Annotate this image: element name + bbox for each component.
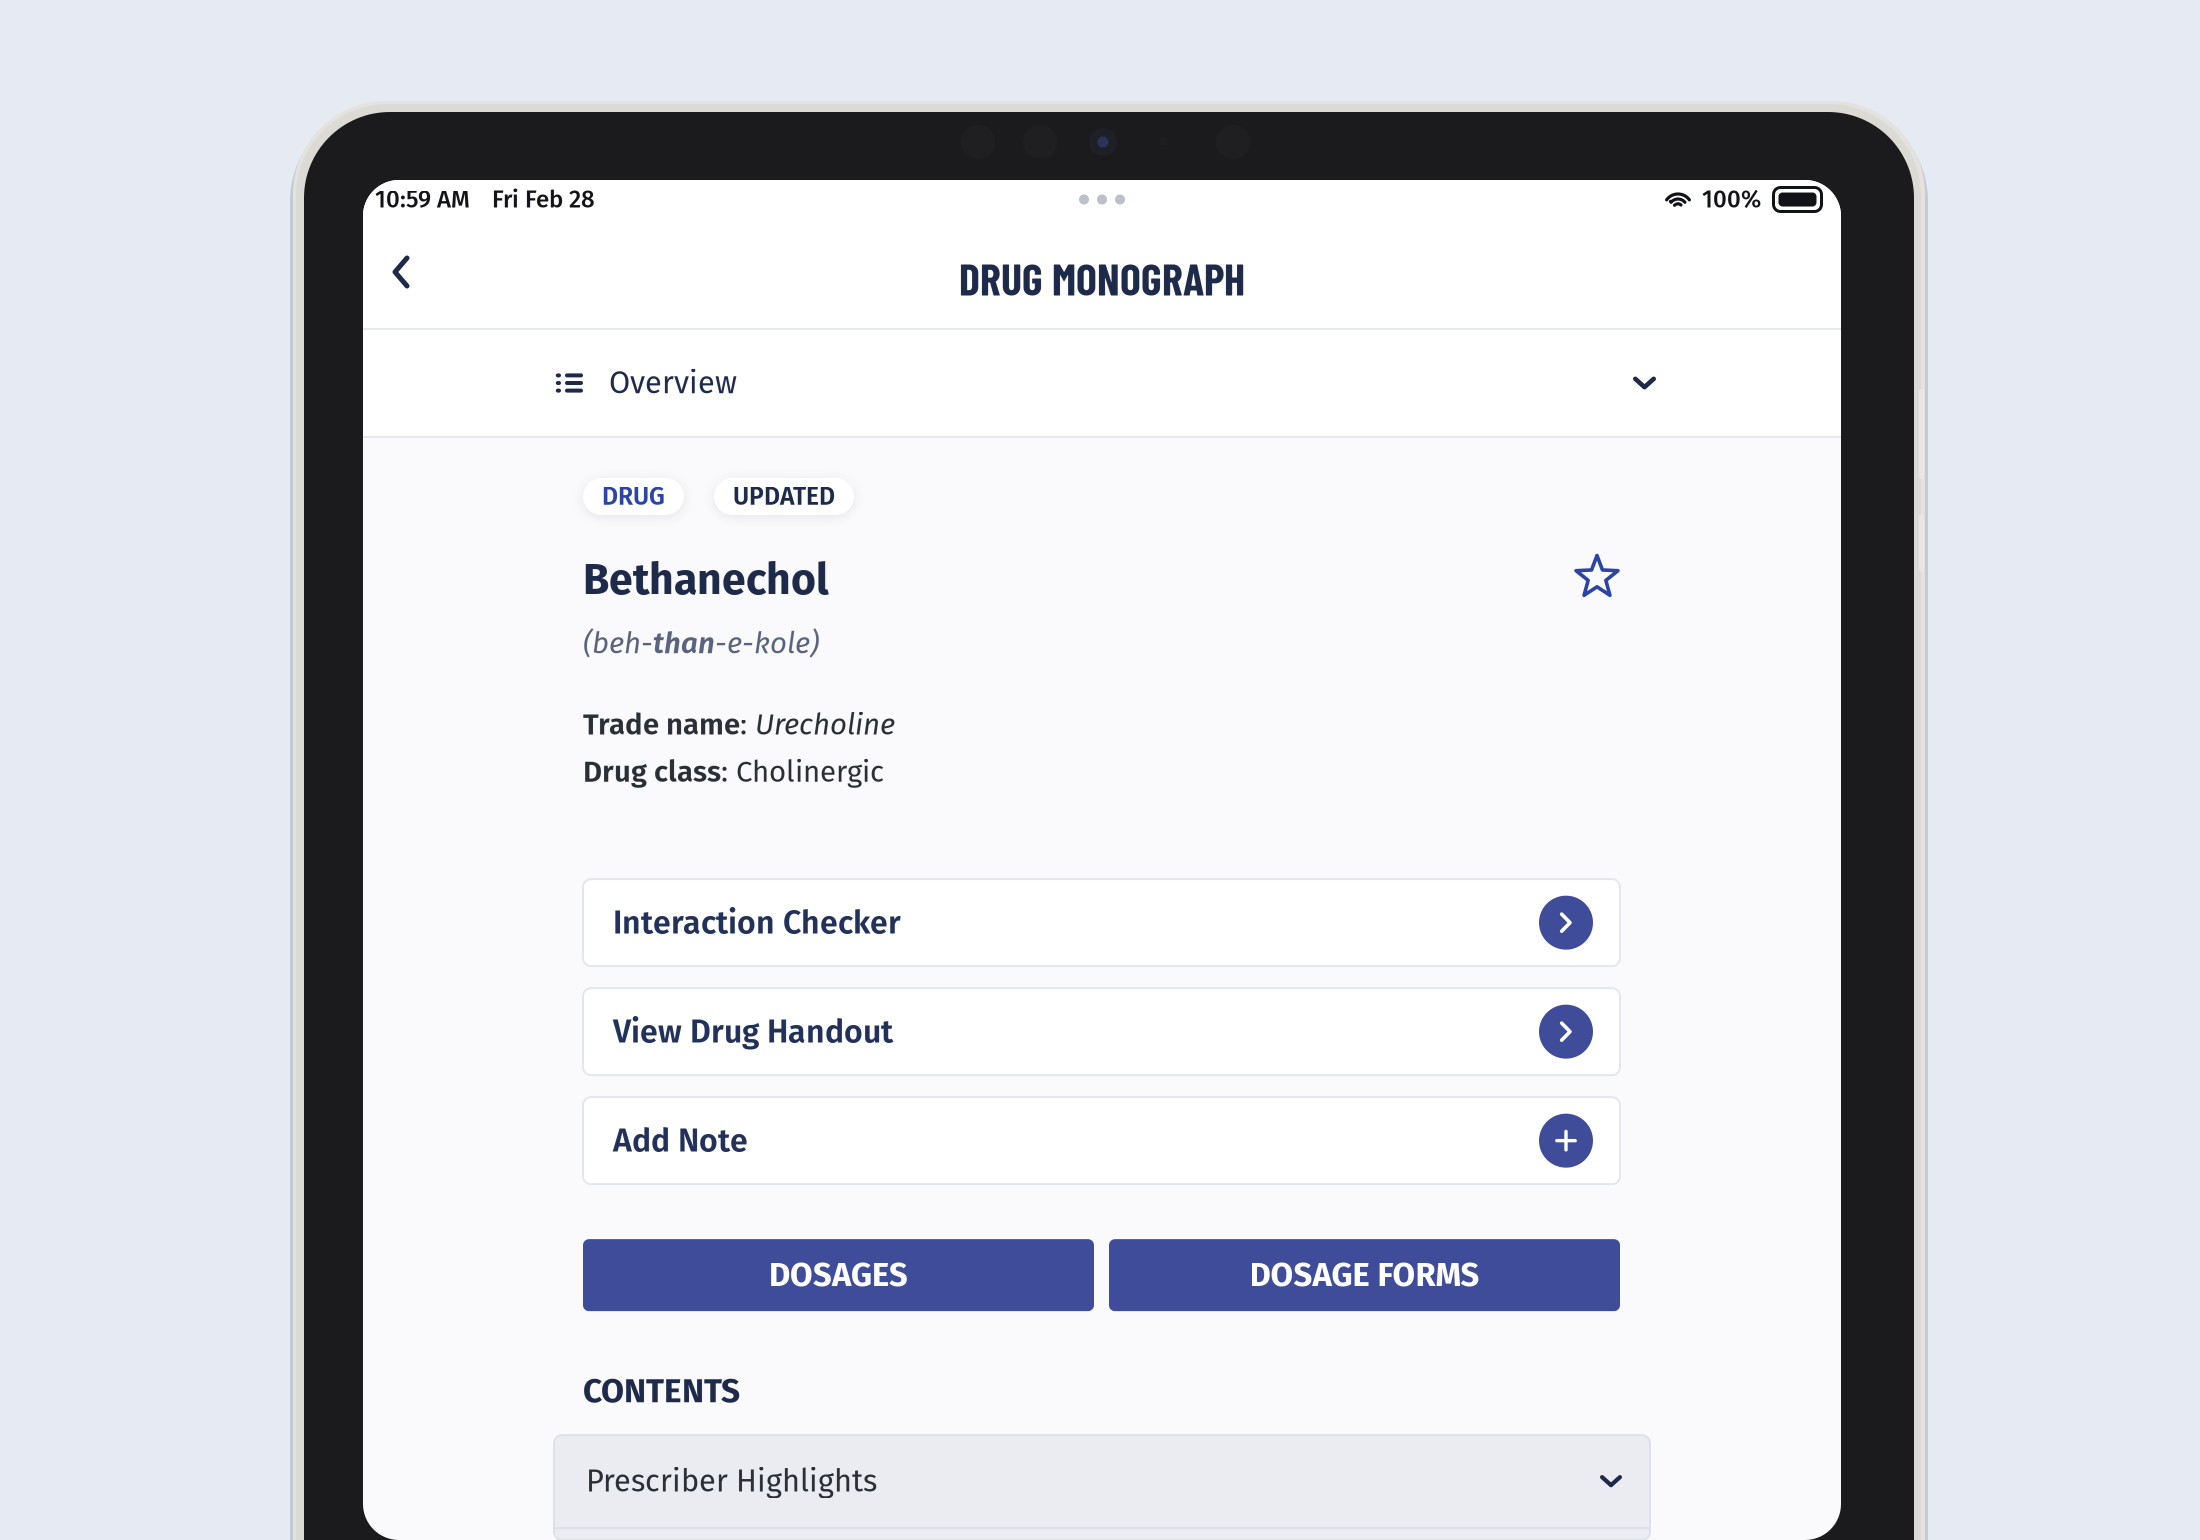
staticText: DOSAGE FORMS (1249, 1256, 1479, 1295)
button[interactable]: Add to favourites (1574, 515, 1620, 600)
button[interactable]: Add Note (583, 1097, 1620, 1184)
staticText: CONTENTS (583, 1371, 740, 1411)
staticText: Prescriber Highlights (586, 1463, 877, 1500)
staticText: DRUG (602, 482, 665, 511)
staticText: Bethanechol (583, 554, 829, 605)
button[interactable]: Prescriber Highlights (554, 1435, 1650, 1527)
staticText: 100% (1702, 185, 1761, 214)
button[interactable]: View Drug Handout (583, 988, 1620, 1075)
staticText: DRUG MONOGRAPH (959, 252, 1245, 304)
staticText: 10:59 AM (375, 185, 470, 214)
staticText: Interaction Checker (613, 903, 901, 942)
staticText: Overview (609, 365, 737, 401)
button[interactable]: DOSAGE FORMS (1109, 1239, 1620, 1311)
staticText: Add Note (613, 1121, 748, 1160)
button[interactable]: DOSAGES (583, 1239, 1094, 1311)
staticText: Trade name: Urecholine (583, 707, 895, 742)
staticText: DOSAGES (769, 1256, 908, 1295)
staticText: Drug class: Cholinergic (583, 755, 884, 789)
staticText: UPDATED (733, 482, 835, 511)
button[interactable]: Overview (363, 330, 1841, 436)
button[interactable]: Interaction Checker (583, 879, 1620, 966)
staticText: (beh-than-e-kole) (583, 626, 819, 660)
staticText: View Drug Handout (613, 1012, 893, 1051)
button[interactable]: Back (375, 244, 427, 311)
staticText: Fri Feb 28 (492, 185, 595, 214)
